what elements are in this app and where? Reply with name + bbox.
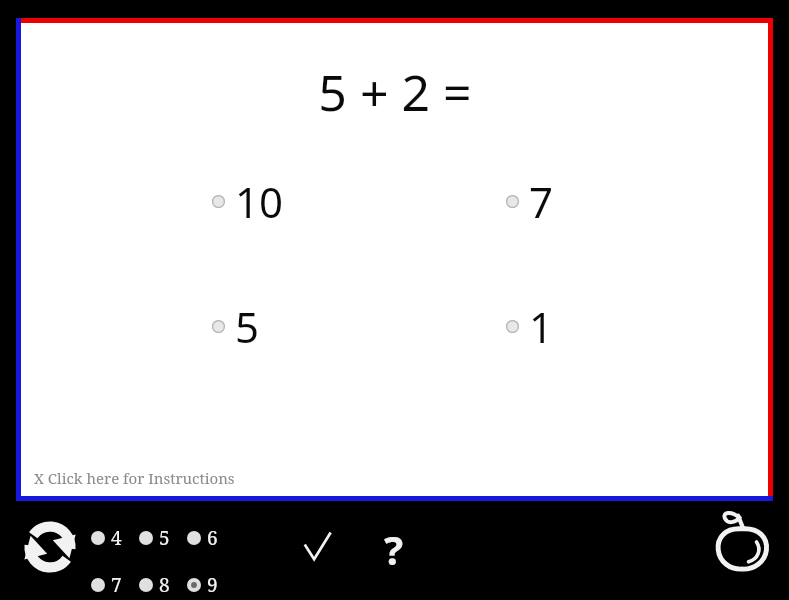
button[interactable]: 1 [506,298,554,355]
button[interactable]: 10 [212,173,284,230]
button[interactable]: Reward [709,509,775,575]
staticText: 7 [111,572,122,598]
button[interactable]: Help [372,521,416,577]
button[interactable]: 7 [91,572,122,598]
staticText: 5 [235,298,260,355]
staticText: 10 [235,173,284,230]
staticText: 5 [159,525,170,551]
button[interactable]: New question [17,516,83,578]
staticText: 5 + 2 = [318,58,472,126]
button[interactable]: 9 [187,572,218,598]
button[interactable]: Check answer [299,528,335,568]
staticText: X Click here for Instructions [34,468,235,488]
button[interactable]: 5 [212,298,260,355]
staticText: 1 [529,298,554,355]
staticText: 8 [159,572,170,598]
staticText: 6 [207,525,218,551]
button[interactable]: 5 [139,525,170,551]
staticText: 4 [111,525,122,551]
button[interactable]: 8 [139,572,170,598]
button[interactable]: X Click here for Instructions [34,468,235,488]
staticText: ? [384,522,404,576]
button[interactable]: 7 [506,173,554,230]
staticText: 7 [529,173,554,230]
button[interactable]: 6 [187,525,218,551]
button[interactable]: 4 [91,525,122,551]
staticText: 9 [207,572,218,598]
